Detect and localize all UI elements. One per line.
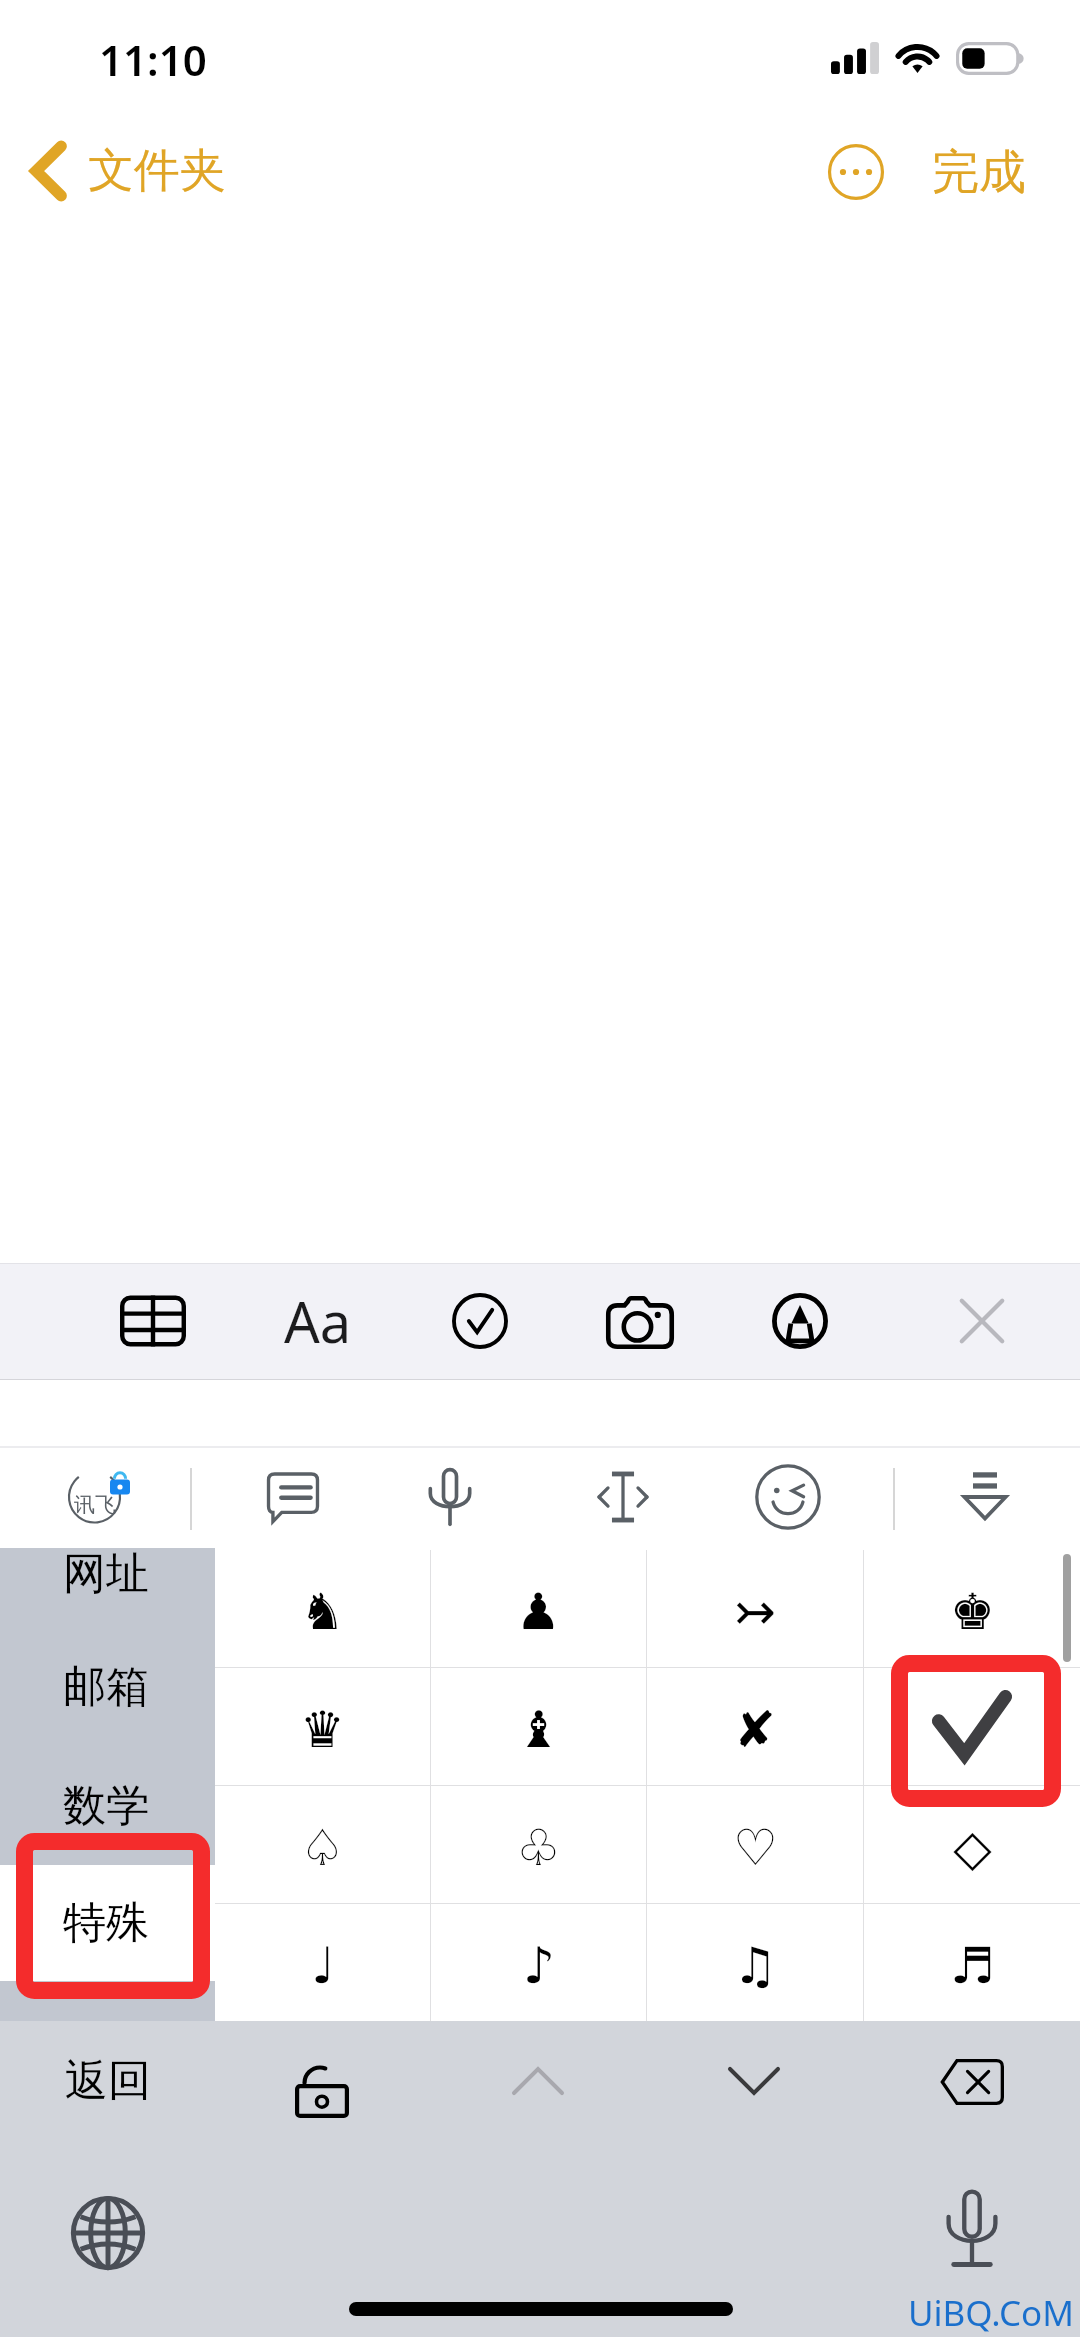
staticText: 数学 <box>63 1779 149 1833</box>
staticText: ♛ <box>300 1701 345 1759</box>
staticText: ✘ <box>734 1701 776 1759</box>
staticText: 邮箱 <box>63 1660 149 1714</box>
button[interactable]: Table <box>107 1275 199 1367</box>
button[interactable]: Checklist <box>434 1275 526 1367</box>
staticText: 讯飞 <box>74 1492 116 1514</box>
staticText: ◇ <box>953 1819 992 1877</box>
button[interactable]: Close <box>936 1275 1028 1367</box>
staticText: 特殊 <box>63 1896 149 1950</box>
staticText: ♩ <box>311 1937 335 1995</box>
button[interactable]: 返回 <box>0 2021 215 2141</box>
button[interactable]: Markup <box>754 1275 846 1367</box>
button[interactable]: Edit cursor <box>575 1449 671 1545</box>
button[interactable]: ♩ <box>215 1904 430 2021</box>
button[interactable]: ✘ <box>647 1668 863 1785</box>
button[interactable]: Dictation <box>927 2183 1017 2273</box>
button[interactable]: ♛ <box>215 1668 430 1785</box>
staticText: ♞ <box>300 1583 345 1641</box>
button[interactable]: 特殊 <box>0 1865 215 1981</box>
button[interactable]: ♬ <box>864 1904 1080 2021</box>
button[interactable]: Caps lock <box>274 2033 370 2129</box>
button[interactable]: Next page <box>706 2033 802 2129</box>
staticText: ♬ <box>950 1937 995 1995</box>
button[interactable]: ♧ <box>431 1786 646 1903</box>
staticText: 完成 <box>932 143 1026 202</box>
staticText: ♤ <box>300 1819 345 1877</box>
button[interactable]: ♪ <box>431 1904 646 2021</box>
button[interactable]: Camera <box>594 1275 686 1367</box>
staticText: ♝ <box>516 1701 561 1759</box>
staticText: UiBQ.CoM <box>908 2289 1074 2337</box>
button[interactable]: Clipboard <box>245 1449 341 1545</box>
button[interactable]: ♞ <box>215 1550 430 1667</box>
staticText: ♚ <box>950 1583 995 1641</box>
button[interactable]: 完成 <box>932 143 1026 202</box>
button[interactable]: Emoji <box>740 1449 836 1545</box>
button[interactable]: Aa <box>258 1279 378 1363</box>
button[interactable]: Input method <box>40 1457 150 1553</box>
button[interactable]: 邮箱 <box>0 1622 215 1748</box>
button[interactable]: Delete <box>940 2059 1004 2105</box>
button[interactable] <box>864 1668 1080 1785</box>
button[interactable]: ♟ <box>431 1550 646 1667</box>
button[interactable]: More options <box>814 130 898 214</box>
button[interactable]: ♡ <box>647 1786 863 1903</box>
button[interactable]: 数学 <box>0 1748 215 1865</box>
staticText: 网址 <box>63 1548 149 1601</box>
button[interactable]: ♫ <box>647 1904 863 2021</box>
button[interactable]: 文件夹 <box>30 140 226 202</box>
staticText: ♧ <box>516 1819 561 1877</box>
staticText: 返回 <box>65 2054 151 2108</box>
button[interactable]: ♚ <box>864 1550 1080 1667</box>
button[interactable]: ↣ <box>647 1550 863 1667</box>
staticText: ♡ <box>733 1819 778 1877</box>
staticText: ♪ <box>523 1937 555 1995</box>
staticText: Aa <box>284 1283 352 1359</box>
staticText: 11:10 <box>99 31 207 88</box>
staticText: ♫ <box>733 1937 778 1995</box>
button[interactable]: Voice input <box>402 1449 498 1545</box>
button[interactable]: Change keyboard <box>63 2188 153 2278</box>
button[interactable]: Previous page <box>490 2033 586 2129</box>
button[interactable]: ◇ <box>864 1786 1080 1903</box>
button[interactable]: ♝ <box>431 1668 646 1785</box>
staticText: ♟ <box>516 1583 561 1641</box>
button[interactable]: Collapse keyboard <box>937 1449 1033 1545</box>
button[interactable]: ♤ <box>215 1786 430 1903</box>
staticText: ↣ <box>734 1583 776 1641</box>
button[interactable]: 网址 <box>0 1551 215 1622</box>
staticText: 文件夹 <box>88 142 226 200</box>
